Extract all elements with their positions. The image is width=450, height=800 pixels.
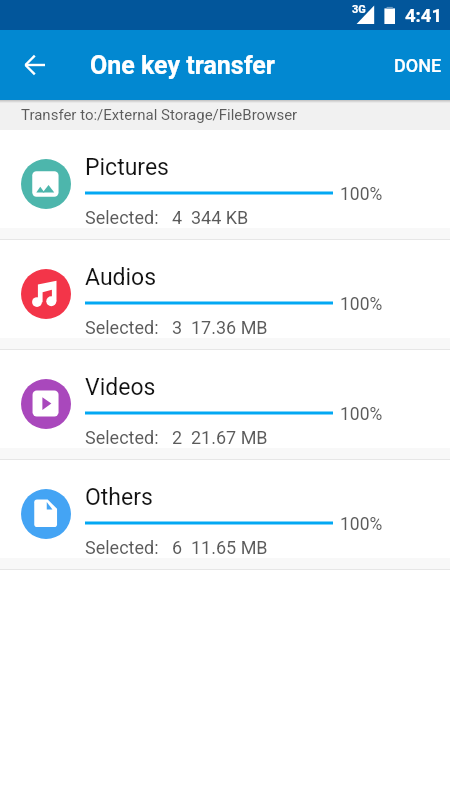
staticText: 3G [352,3,366,16]
staticText: One key transfer [90,51,275,80]
staticText: DONE [394,55,442,76]
staticText: Transfer to:/External Storage/FileBrowse… [21,106,298,124]
button[interactable]: Videos [0,350,450,448]
staticText: 100% [340,514,383,535]
staticText: Audios [85,264,157,291]
staticText: Others [85,484,153,511]
button[interactable]: Back [9,39,61,91]
staticText: Selected: 4 344 KB [85,207,249,228]
staticText: Selected: 2 21.67 MB [85,427,268,448]
button[interactable]: Audios [0,240,450,338]
staticText: 4:41 [405,5,443,27]
button[interactable]: Others [0,460,450,558]
staticText: Pictures [85,154,169,181]
button[interactable]: DONE [384,41,450,90]
staticText: 100% [340,184,383,205]
staticText: 100% [340,404,383,425]
staticText: 100% [340,294,383,315]
staticText: Selected: 6 11.65 MB [85,537,268,558]
staticText: Videos [85,374,156,401]
staticText: Selected: 3 17.36 MB [85,317,268,338]
button[interactable]: Pictures [0,130,450,228]
